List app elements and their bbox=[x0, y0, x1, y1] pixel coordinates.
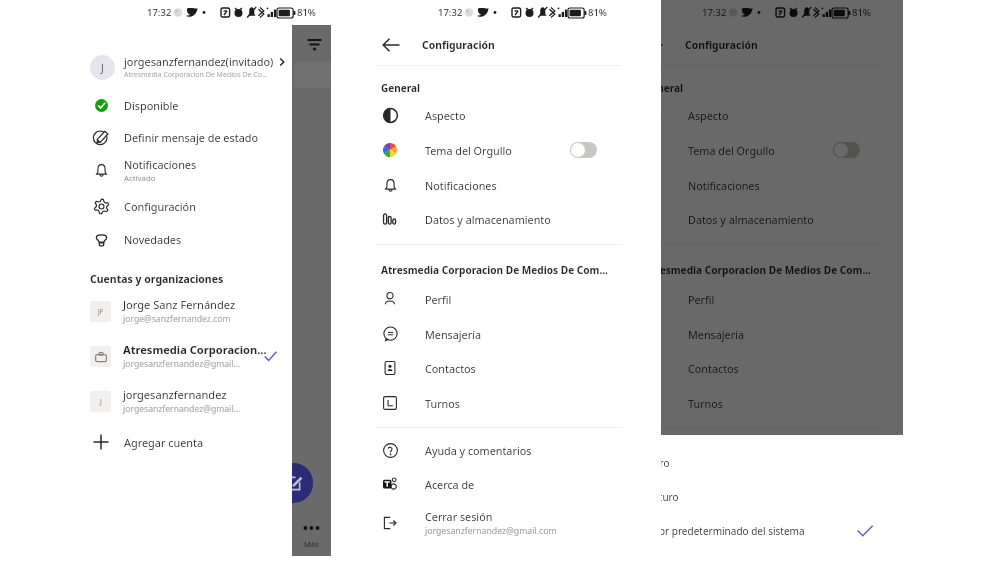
staticText: Activado bbox=[124, 173, 156, 184]
staticText: General bbox=[381, 81, 420, 95]
staticText: 81% bbox=[297, 6, 316, 19]
button[interactable]: Novedades bbox=[78, 227, 331, 251]
button[interactable]: Atrás bbox=[661, 31, 668, 59]
button[interactable]: Ayuda y comentarios bbox=[335, 439, 640, 461]
staticText: Turnos bbox=[688, 396, 723, 411]
button[interactable]: Tema del Orgullo bbox=[661, 139, 903, 161]
staticText: Tema del Orgullo bbox=[688, 143, 775, 158]
button[interactable]: Definir mensaje de estado bbox=[78, 125, 331, 149]
button[interactable]: Atrás bbox=[377, 31, 405, 59]
staticText: Aspecto bbox=[688, 108, 729, 123]
button[interactable]: Aspecto bbox=[335, 104, 640, 126]
staticText: Agregar cuenta bbox=[124, 435, 204, 450]
staticText: Atresmedia Corporacion De Medios De Com.… bbox=[381, 263, 608, 277]
staticText: jorgesanzfernandez bbox=[123, 387, 227, 402]
button[interactable]: Acerca de bbox=[335, 473, 640, 495]
staticText: jorgesanzfernandez@gmail... bbox=[123, 358, 241, 370]
button[interactable]: Valor predeterminado del sistema bbox=[661, 514, 903, 548]
staticText: 17:32 bbox=[147, 6, 172, 19]
button[interactable]: Contactos bbox=[661, 357, 903, 379]
staticText: Turnos bbox=[425, 396, 460, 411]
staticText: 81% bbox=[852, 6, 871, 19]
staticText: Acerca de bbox=[425, 477, 475, 492]
button[interactable]: Turnos bbox=[661, 392, 903, 414]
staticText: Atresmedia Corporacion... bbox=[123, 342, 267, 357]
staticText: J bbox=[101, 61, 104, 75]
staticText: Contactos bbox=[425, 361, 476, 376]
button[interactable]: Tema del Orgullo bbox=[335, 139, 640, 161]
button[interactable]: Atresmedia Corporacion... bbox=[78, 339, 331, 373]
button[interactable]: Mensajería bbox=[335, 323, 640, 345]
staticText: General bbox=[661, 81, 683, 95]
staticText: Perfil bbox=[688, 292, 715, 307]
staticText: 17:32 bbox=[438, 6, 463, 19]
staticText: jorgesanzfernandez@gmail... bbox=[123, 403, 241, 415]
staticText: Datos y almacenamiento bbox=[688, 212, 814, 227]
staticText: Contactos bbox=[688, 361, 739, 376]
staticText: Oscuro bbox=[661, 490, 679, 504]
button[interactable]: Tema del Orgullo bbox=[833, 142, 860, 158]
button[interactable]: Aspecto bbox=[661, 104, 903, 126]
button[interactable]: Notificaciones bbox=[661, 174, 903, 196]
button[interactable]: Cerrar sesión bbox=[335, 507, 640, 539]
staticText: Configuración bbox=[422, 38, 495, 52]
staticText: Perfil bbox=[425, 292, 452, 307]
button[interactable]: Notificaciones bbox=[78, 153, 331, 187]
staticText: Ayuda y comentarios bbox=[425, 443, 532, 458]
staticText: J bbox=[100, 397, 102, 406]
staticText: Notificaciones bbox=[124, 157, 197, 172]
staticText: Atresmedia Corporacion De Medios De Com.… bbox=[661, 263, 871, 277]
staticText: Cerrar sesión bbox=[425, 509, 493, 524]
staticText: Mensajería bbox=[688, 327, 744, 342]
button[interactable]: Oscuro bbox=[661, 480, 903, 514]
button[interactable]: Claro bbox=[661, 446, 903, 480]
staticText: 17:32 bbox=[702, 6, 727, 19]
staticText: jorgesanzfernandez(invitado) bbox=[124, 54, 274, 69]
staticText: Mensajería bbox=[425, 327, 481, 342]
staticText: Configuración bbox=[685, 38, 758, 52]
button[interactable]: Perfil bbox=[661, 288, 903, 310]
button[interactable]: Notificaciones bbox=[335, 174, 640, 196]
button[interactable]: Turnos bbox=[335, 392, 640, 414]
staticText: JF bbox=[98, 307, 104, 316]
staticText: Notificaciones bbox=[688, 178, 760, 193]
button[interactable]: Perfil bbox=[335, 288, 640, 310]
button[interactable]: Agregar cuenta bbox=[78, 428, 331, 456]
button[interactable]: Datos y almacenamiento bbox=[335, 208, 640, 230]
staticText: Claro bbox=[661, 456, 670, 470]
staticText: Definir mensaje de estado bbox=[124, 130, 259, 145]
button[interactable]: Datos y almacenamiento bbox=[661, 208, 903, 230]
button[interactable]: J bbox=[78, 49, 331, 85]
button[interactable]: Mensajería bbox=[661, 323, 903, 345]
staticText: 81% bbox=[588, 6, 607, 19]
staticText: Atresmedia Corporacion De Medios De Co..… bbox=[124, 70, 268, 80]
staticText: Aspecto bbox=[425, 108, 466, 123]
staticText: Más bbox=[304, 539, 319, 549]
staticText: Datos y almacenamiento bbox=[425, 212, 551, 227]
button[interactable]: Tema del Orgullo bbox=[570, 142, 597, 158]
button[interactable]: J bbox=[78, 384, 331, 418]
button[interactable]: Configuración bbox=[78, 194, 331, 218]
staticText: Disponible bbox=[124, 98, 179, 113]
staticText: jorgesanzfernandez@gmail.com bbox=[425, 525, 557, 537]
button[interactable]: Contactos bbox=[335, 357, 640, 379]
staticText: Jorge Sanz Fernández bbox=[123, 297, 236, 312]
staticText: Notificaciones bbox=[425, 178, 497, 193]
button[interactable]: Nuevo mensaje bbox=[292, 463, 313, 503]
button[interactable]: JF bbox=[78, 294, 331, 328]
staticText: Tema del Orgullo bbox=[425, 143, 512, 158]
staticText: Cuentas y organizaciones bbox=[90, 272, 224, 286]
button[interactable]: Disponible bbox=[78, 93, 331, 117]
staticText: Configuración bbox=[124, 199, 196, 214]
staticText: jorge@sanzfernandez.com bbox=[123, 313, 231, 325]
staticText: Valor predeterminado del sistema bbox=[661, 524, 805, 538]
staticText: Novedades bbox=[124, 232, 182, 247]
